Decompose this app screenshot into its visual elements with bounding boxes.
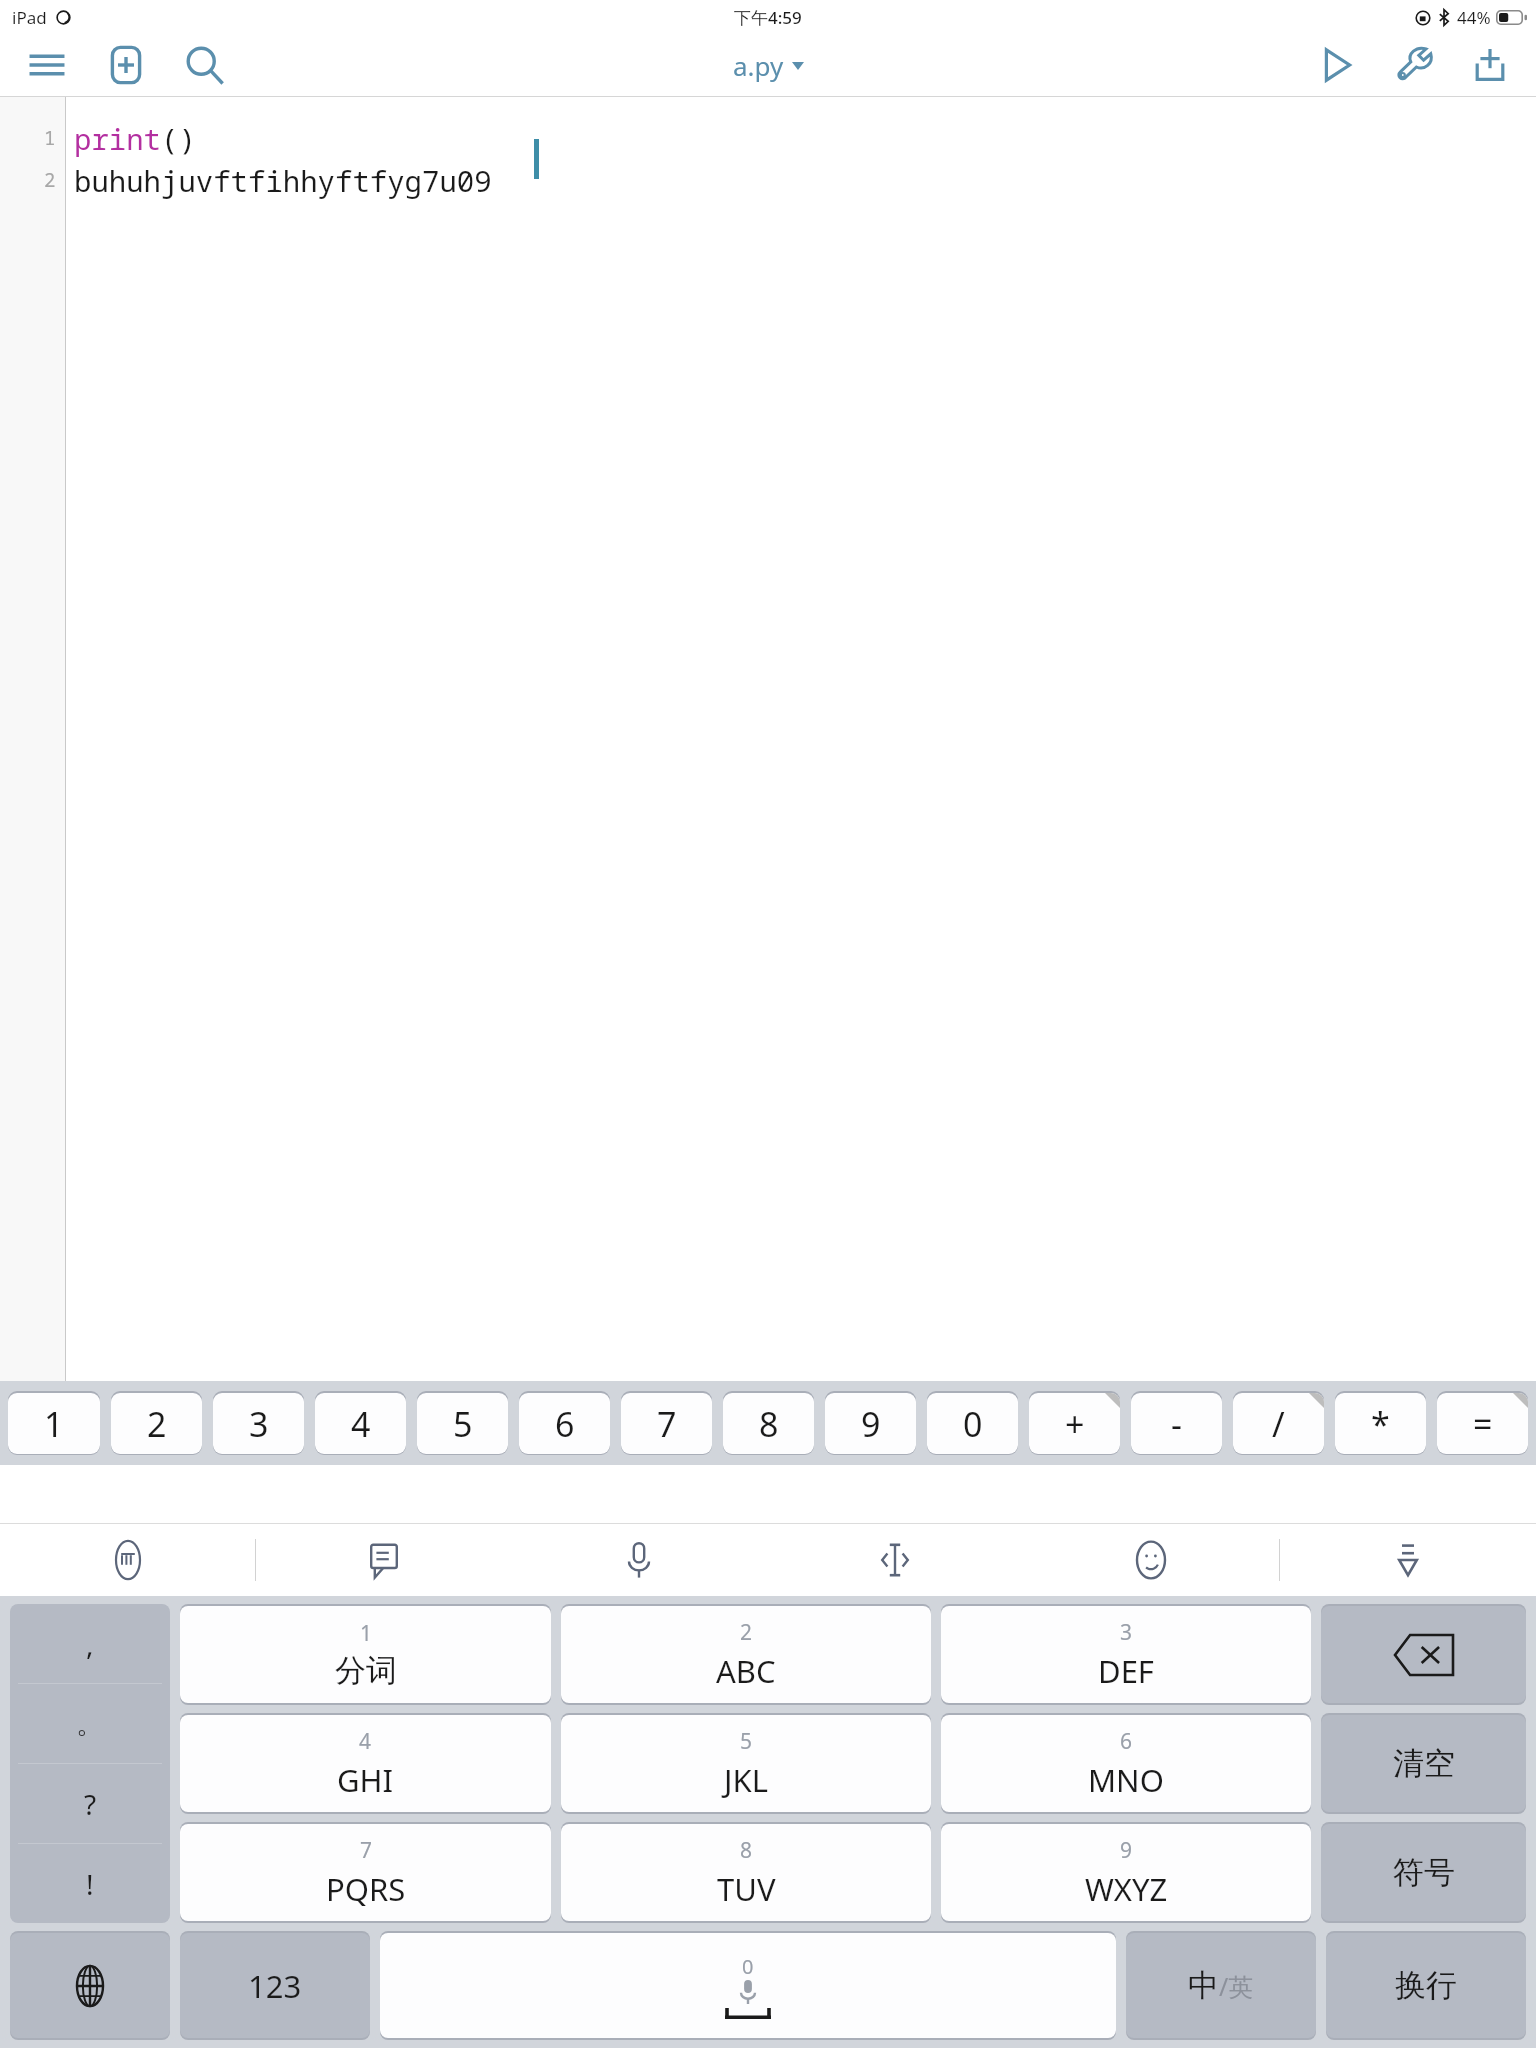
button[interactable]: 0: [927, 1391, 1018, 1455]
button[interactable]: 6: [519, 1391, 610, 1455]
staticText: 2: [740, 1618, 753, 1647]
staticText: 3: [249, 1401, 269, 1447]
staticText: 。: [76, 1706, 104, 1741]
staticText: 3: [1120, 1618, 1133, 1647]
button[interactable]: 7: [180, 1822, 551, 1923]
staticText: 2: [44, 167, 56, 193]
button[interactable]: Emoji: [1023, 1524, 1279, 1596]
button[interactable]: 3: [213, 1391, 304, 1455]
other: Space: [380, 1931, 1116, 2040]
staticText: 8: [759, 1401, 779, 1447]
button[interactable]: Tools: [1388, 39, 1440, 91]
button[interactable]: 换行: [1326, 1931, 1526, 2040]
staticText: 下午4:59: [734, 6, 802, 29]
staticText: 符号: [1393, 1853, 1455, 1892]
staticText: 5: [453, 1401, 473, 1447]
button[interactable]: a.py: [725, 40, 812, 91]
staticText: buhuhjuvftfihhyftfyg7u09: [74, 161, 492, 200]
button[interactable]: [10, 1931, 170, 2040]
staticText: MNO: [1088, 1759, 1164, 1801]
staticText: ABC: [716, 1650, 776, 1692]
button[interactable]: ,: [10, 1604, 170, 1923]
button[interactable]: 5: [417, 1391, 508, 1455]
staticText: DEF: [1098, 1650, 1154, 1692]
staticText: 8: [740, 1836, 753, 1865]
staticText: iPad: [12, 6, 47, 29]
staticText: 清空: [1393, 1744, 1455, 1783]
staticText: +: [1065, 1401, 1085, 1447]
button[interactable]: Share: [1464, 39, 1516, 91]
button[interactable]: 1: [180, 1604, 551, 1705]
staticText: 7: [657, 1401, 677, 1447]
staticText: 1: [44, 125, 56, 151]
staticText: 1: [44, 1401, 64, 1447]
button[interactable]: New file: [100, 39, 152, 91]
button[interactable]: 9: [941, 1822, 1311, 1923]
button[interactable]: 7: [621, 1391, 712, 1455]
button[interactable]: Candidates: [256, 1524, 511, 1596]
button[interactable]: Menu: [22, 40, 72, 90]
staticText: 4: [359, 1727, 372, 1756]
staticText: ,: [86, 1625, 94, 1663]
staticText: 0: [963, 1401, 983, 1447]
staticText: TUV: [717, 1868, 776, 1910]
button[interactable]: 3: [941, 1604, 1311, 1705]
staticText: /: [1272, 1401, 1285, 1447]
staticText: a.py: [733, 48, 784, 83]
button[interactable]: 4: [315, 1391, 406, 1455]
staticText: *: [1371, 1401, 1390, 1447]
button[interactable]: 中/英: [1126, 1931, 1316, 2040]
button[interactable]: !: [10, 1844, 170, 1923]
button[interactable]: Run: [1310, 39, 1362, 91]
staticText: GHI: [337, 1759, 394, 1801]
button[interactable]: 9: [825, 1391, 916, 1455]
staticText: 1: [360, 1619, 373, 1648]
button[interactable]: 4: [180, 1713, 551, 1814]
staticText: 44%: [1457, 6, 1491, 29]
button[interactable]: -: [1131, 1391, 1222, 1455]
staticText: 0: [742, 1953, 754, 1980]
button[interactable]: ?: [10, 1764, 170, 1843]
staticText: 5: [740, 1727, 753, 1756]
button[interactable]: Search: [178, 38, 232, 92]
staticText: 6: [1120, 1727, 1133, 1756]
button[interactable]: 清空: [1321, 1713, 1526, 1814]
button[interactable]: 8: [561, 1822, 931, 1923]
button[interactable]: +: [1029, 1391, 1120, 1455]
staticText: ?: [84, 1785, 97, 1823]
button[interactable]: 2: [561, 1604, 931, 1705]
button[interactable]: 2: [111, 1391, 202, 1455]
staticText: 分词: [335, 1651, 397, 1690]
staticText: print(): [74, 119, 196, 158]
button[interactable]: 6: [941, 1713, 1311, 1814]
button[interactable]: Move cursor: [767, 1524, 1023, 1596]
staticText: WXYZ: [1085, 1868, 1168, 1910]
button[interactable]: 5: [561, 1713, 931, 1814]
button[interactable]: 。: [10, 1684, 170, 1763]
staticText: 6: [555, 1401, 575, 1447]
staticText: JKL: [724, 1759, 768, 1801]
button[interactable]: 1: [0, 97, 1536, 1381]
button[interactable]: 符号: [1321, 1822, 1526, 1923]
button[interactable]: *: [1335, 1391, 1426, 1455]
button[interactable]: =: [1437, 1391, 1528, 1455]
staticText: =: [1473, 1401, 1493, 1447]
other: Backspace: [1321, 1604, 1526, 1705]
button[interactable]: 123: [180, 1931, 370, 2040]
button[interactable]: Voice input: [511, 1524, 767, 1596]
button[interactable]: Input method: [0, 1524, 255, 1596]
staticText: 123: [248, 1965, 302, 2007]
button[interactable]: [1321, 1604, 1526, 1705]
staticText: 换行: [1395, 1966, 1457, 2005]
button[interactable]: Hide keyboard: [1280, 1524, 1536, 1596]
staticText: 9: [861, 1401, 881, 1447]
button[interactable]: /: [1233, 1391, 1324, 1455]
button[interactable]: 8: [723, 1391, 814, 1455]
button[interactable]: 0: [380, 1931, 1116, 2040]
button[interactable]: 1: [8, 1391, 100, 1455]
other: Switch language: [10, 1931, 170, 2040]
button[interactable]: ,: [10, 1604, 170, 1683]
staticText: 9: [1120, 1836, 1133, 1865]
staticText: 中/英: [1188, 1966, 1254, 2005]
staticText: 7: [360, 1836, 373, 1865]
